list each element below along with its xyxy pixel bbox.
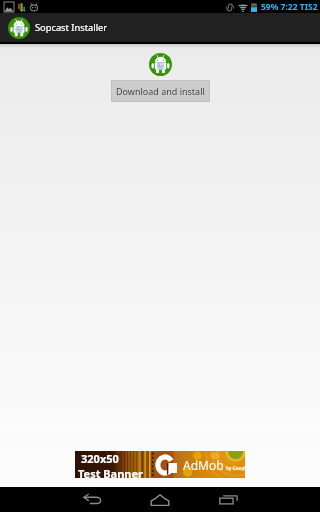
staticText: 320x50 [81,451,119,466]
staticText: Test Banner [78,466,143,478]
button[interactable]: Home [150,487,170,512]
staticText: AdMob [183,457,224,473]
staticText: Sopcast Installer [35,21,108,34]
button[interactable]: Download and install [111,80,210,102]
button[interactable]: 320x50 [75,451,245,478]
button[interactable]: Back [82,487,102,512]
staticText: by Google [226,465,245,471]
staticText: Download and install [116,85,205,97]
staticText: 59% 7:22 TIS2 [261,1,318,13]
button[interactable]: Recent apps [218,487,238,512]
